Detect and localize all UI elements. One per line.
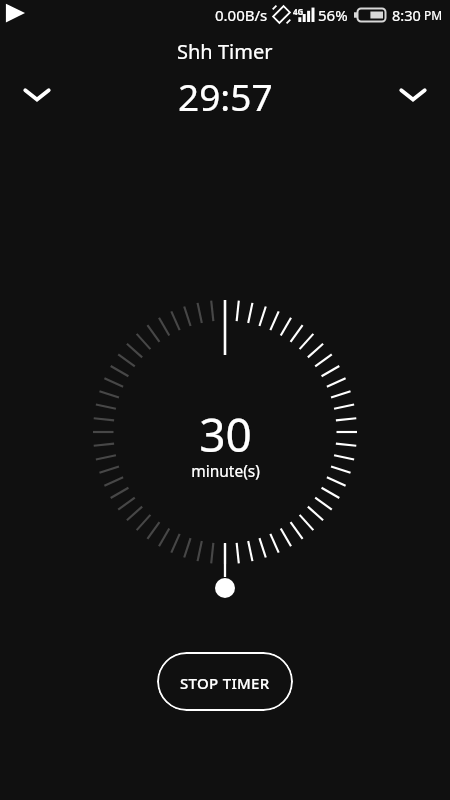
button[interactable]: Timer duration dial, 30 minutes (45, 252, 405, 612)
staticText: STOP TIMER (180, 673, 270, 693)
staticText: Shh Timer (177, 38, 273, 65)
staticText: 29:57 (178, 71, 273, 121)
staticText: 56% (318, 5, 348, 25)
button[interactable]: Decrease time (13, 71, 61, 119)
staticText: 0.00B/s (215, 5, 268, 25)
other: Playing (0, 0, 28, 28)
staticText: PM (424, 7, 443, 23)
staticText: 8:30 (392, 5, 421, 25)
button[interactable]: Increase time (389, 71, 437, 119)
staticText: minute(s) (191, 460, 260, 481)
button[interactable]: STOP TIMER (157, 652, 293, 711)
other: 4G signal (294, 5, 315, 24)
staticText: 4G (293, 6, 304, 17)
other: Auto rotate (271, 4, 292, 25)
staticText: 30 (199, 403, 252, 466)
